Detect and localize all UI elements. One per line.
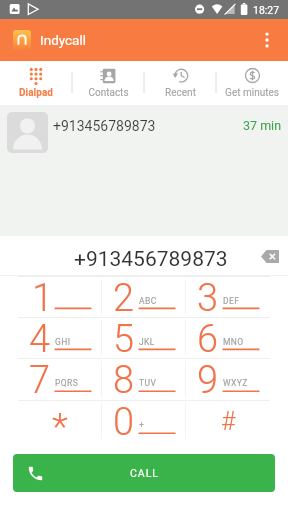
staticText: * (52, 405, 68, 447)
staticText: 2 (113, 276, 135, 317)
button[interactable]: Recent (144, 61, 216, 105)
staticText: 3 (197, 276, 219, 317)
staticText: 37 min (243, 118, 282, 133)
staticText: ABC (139, 296, 157, 306)
staticText: 8 (113, 358, 135, 400)
staticText: JKL (139, 337, 155, 347)
staticText: Dialpad (19, 87, 53, 99)
button[interactable]: 1 (18, 276, 102, 317)
staticText: 6 (197, 317, 219, 358)
staticText: 4 (29, 317, 51, 358)
staticText: Recent (165, 87, 196, 99)
button[interactable]: More options (248, 21, 286, 59)
button[interactable]: 3 (186, 276, 270, 317)
staticText: 9 (197, 358, 219, 400)
staticText: CALL (130, 467, 159, 479)
staticText: Get minutes (225, 87, 279, 99)
staticText: 18:27 (253, 4, 280, 16)
staticText: Indycall (40, 32, 87, 48)
staticText: DEF (223, 296, 240, 306)
button[interactable]: Get minutes (216, 61, 288, 105)
button[interactable]: 6 (186, 317, 270, 358)
staticText: 0 (113, 400, 135, 442)
button[interactable]: * (18, 400, 102, 442)
staticText: +913456789873 (53, 118, 156, 134)
button[interactable]: +913456789873 (0, 112, 288, 160)
button[interactable]: Backspace (259, 245, 281, 267)
staticText: GHI (55, 337, 71, 347)
button[interactable]: 5 (102, 317, 186, 358)
button[interactable]: Dialpad (0, 61, 72, 105)
staticText: TUV (139, 378, 157, 388)
button[interactable]: 2 (102, 276, 186, 317)
staticText: +913456789873 (74, 247, 228, 272)
staticText: PQRS (55, 378, 79, 388)
staticText: # (221, 407, 236, 436)
button[interactable]: 8 (102, 358, 186, 400)
staticText: 5 (113, 317, 135, 358)
staticText: Contacts (88, 87, 129, 99)
button[interactable]: 7 (18, 358, 102, 400)
button[interactable]: # (186, 400, 270, 442)
staticText: + (139, 420, 145, 430)
button[interactable]: 0 (102, 400, 186, 442)
button[interactable]: CALL (13, 454, 275, 492)
button[interactable]: 9 (186, 358, 270, 400)
button[interactable]: 4 (18, 317, 102, 358)
staticText: 7 (29, 358, 51, 400)
staticText: 1 (32, 276, 54, 317)
staticText: WXYZ (223, 378, 248, 388)
staticText: MNO (223, 337, 244, 347)
button[interactable]: Contacts (72, 61, 144, 105)
